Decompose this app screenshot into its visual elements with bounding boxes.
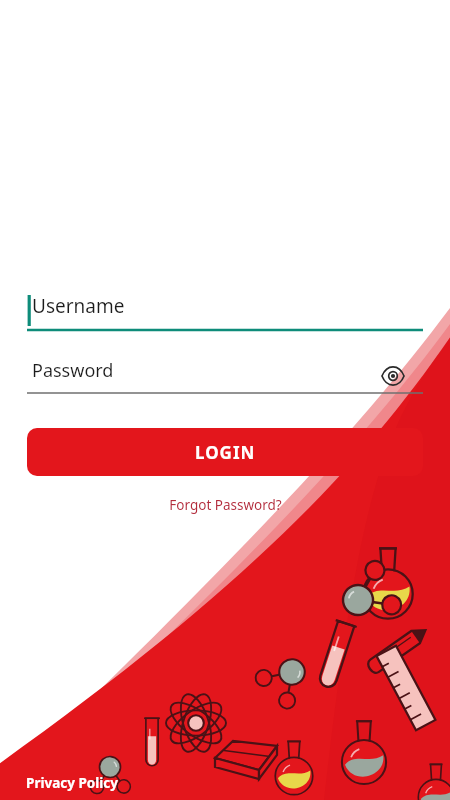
button[interactable]: LOGIN [27, 428, 423, 476]
staticText: Privacy Policy [26, 774, 118, 792]
button[interactable]: Forgot Password? [0, 492, 450, 518]
staticText: LOGIN [195, 441, 256, 464]
staticText: Password [32, 358, 114, 383]
button[interactable]: Username [27, 292, 423, 332]
button[interactable]: Show password [377, 360, 409, 392]
button[interactable]: Privacy Policy [18, 770, 126, 796]
staticText: Forgot Password? [169, 496, 282, 514]
staticText: Username [32, 293, 125, 319]
button[interactable]: Password [27, 358, 423, 394]
